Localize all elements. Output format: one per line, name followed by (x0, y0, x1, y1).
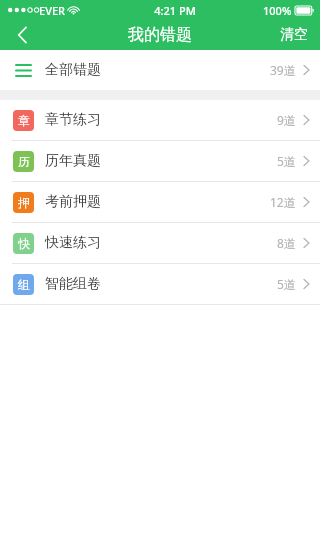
staticText: 快 (18, 236, 30, 251)
button[interactable]: 章 (0, 100, 320, 140)
staticText: 历年真题 (45, 152, 277, 170)
staticText: 考前押题 (45, 193, 270, 211)
button[interactable]: 清空 (268, 20, 320, 50)
staticText: 清空 (280, 26, 308, 44)
staticText: 章节练习 (45, 111, 277, 129)
staticText: 5道 (277, 276, 296, 292)
staticText: 9道 (277, 112, 296, 128)
button[interactable]: 押 (0, 182, 320, 222)
button[interactable]: 组 (0, 264, 320, 304)
staticText: 押 (18, 195, 30, 210)
button[interactable]: 全部错题 (0, 50, 320, 90)
staticText: 智能组卷 (45, 275, 277, 293)
staticText: 快速练习 (45, 234, 277, 252)
staticText: EVER (39, 3, 65, 18)
staticText: 8道 (277, 235, 296, 251)
staticText: 历 (18, 154, 30, 169)
staticText: 全部错题 (45, 61, 270, 79)
staticText: 4:21 PM (87, 3, 263, 18)
staticText: 组 (18, 277, 30, 292)
staticText: 我的错题 (128, 25, 192, 45)
staticText: 100% (263, 3, 292, 18)
button[interactable]: Back (0, 20, 44, 50)
staticText: 章 (18, 113, 30, 128)
staticText: 12道 (270, 194, 296, 210)
staticText: 5道 (277, 153, 296, 169)
button[interactable]: 快 (0, 223, 320, 263)
button[interactable]: 历 (0, 141, 320, 181)
staticText: 39道 (270, 62, 296, 78)
